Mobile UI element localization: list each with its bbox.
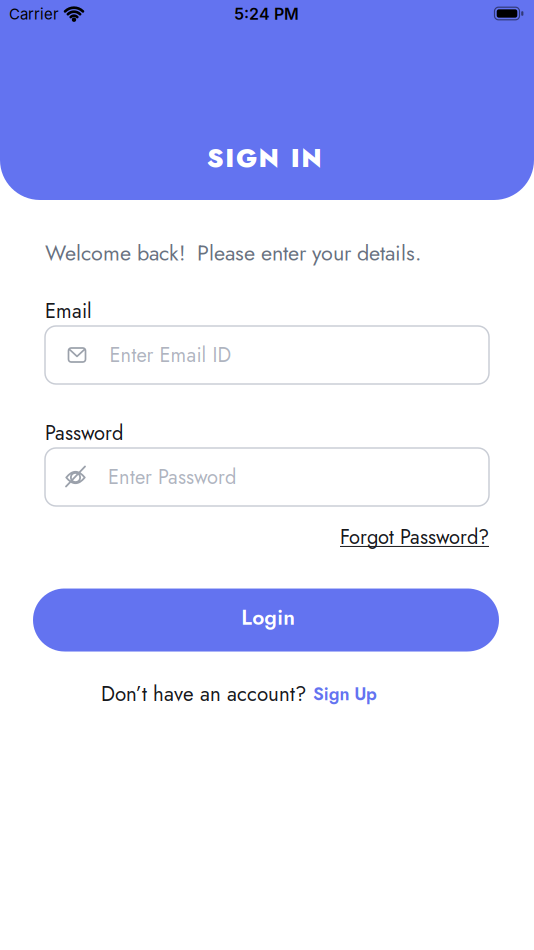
staticText: Welcome back! Please enter your details. bbox=[45, 237, 421, 269]
staticText: Login bbox=[241, 602, 295, 633]
button[interactable]: Forgot Password? bbox=[340, 522, 489, 551]
button[interactable]: Enter Password bbox=[45, 448, 489, 506]
staticText: Password bbox=[45, 418, 123, 447]
button[interactable]: Sign Up bbox=[313, 681, 377, 707]
staticText: Enter Email ID bbox=[109, 340, 231, 369]
staticText: 5:24 PM bbox=[234, 4, 299, 24]
button[interactable]: Enter Email ID bbox=[45, 326, 489, 384]
staticText: Sign Up bbox=[313, 681, 377, 707]
staticText: Forgot Password? bbox=[340, 522, 489, 551]
button[interactable]: Login bbox=[33, 588, 499, 651]
staticText: Email bbox=[45, 296, 92, 325]
staticText: Enter Password bbox=[108, 462, 236, 491]
staticText: SIGN IN bbox=[207, 139, 322, 176]
staticText: Carrier bbox=[9, 5, 59, 23]
staticText: Don’t have an account? bbox=[101, 679, 306, 709]
